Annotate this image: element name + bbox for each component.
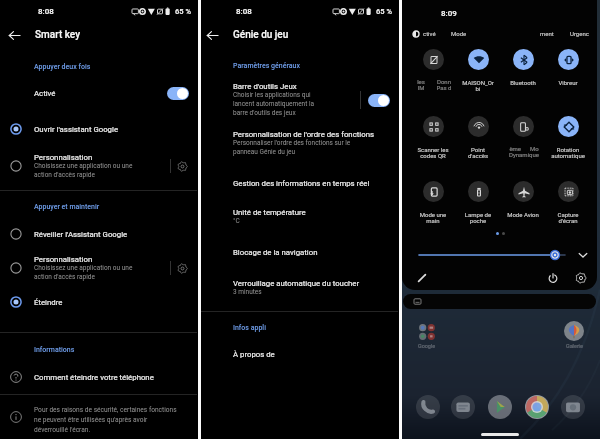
staticText: Point d'accès <box>455 146 501 160</box>
staticText: Personnalisation de l'ordre des fonction… <box>233 130 374 139</box>
button[interactable]: Ouvrir l'assistant Google <box>0 118 197 140</box>
staticText: les IM <box>400 78 446 92</box>
staticText: Mode <box>451 30 467 37</box>
button[interactable]: Personnalisation <box>0 149 197 183</box>
staticText: 3 minutes <box>233 288 262 296</box>
button[interactable]: Power <box>547 272 559 284</box>
staticText: Personnalisation <box>34 255 93 264</box>
staticText: Urgenc <box>570 30 589 37</box>
staticText: Mode une main <box>410 211 456 225</box>
staticText: Comment éteindre votre téléphone <box>34 373 154 382</box>
staticText: ème Mo Dynamique <box>499 145 549 159</box>
button[interactable]: Toggle <box>167 87 189 100</box>
button[interactable]: Settings <box>575 272 587 284</box>
button[interactable]: Back <box>198 22 398 48</box>
staticText <box>500 146 546 153</box>
button[interactable]: Lampe de poche <box>455 181 501 225</box>
staticText: À propos de <box>233 350 275 359</box>
staticText: Paramètres généraux <box>233 62 301 70</box>
other: Back <box>205 28 219 42</box>
button[interactable]: Barre d'outils Jeux <box>198 79 398 121</box>
button[interactable]: Mode Avion <box>500 181 546 218</box>
button[interactable]: Personnalisation de l'ordre des fonction… <box>198 130 398 160</box>
staticText: Choisir les applications qui lancent aut… <box>233 91 315 117</box>
staticText: Lampe de poche <box>455 211 501 225</box>
staticText: Personnaliser l'ordre des fonctions sur … <box>233 139 351 156</box>
button[interactable]: Settings <box>175 261 189 275</box>
button[interactable]: Gestion des informations en temps réel <box>198 179 398 197</box>
staticText: Choisissez une application ou une action… <box>34 264 133 281</box>
button[interactable]: Settings <box>175 159 189 173</box>
button[interactable]: App <box>525 395 549 419</box>
button[interactable]: Scanner les codes QR <box>410 116 456 160</box>
button[interactable]: Comment éteindre votre téléphone <box>0 365 197 389</box>
button[interactable]: Bluetooth <box>500 49 546 86</box>
button[interactable]: Rotation automatique <box>545 116 591 160</box>
staticText: Bluetooth <box>500 79 546 86</box>
staticText: Infos appli <box>233 324 266 332</box>
button[interactable]: App <box>416 395 440 419</box>
staticText: Unité de température <box>233 208 306 217</box>
button[interactable]: Capture d'écran <box>545 181 591 225</box>
staticText: MAISON_Or bi <box>455 79 501 93</box>
button[interactable]: Expand <box>577 249 589 261</box>
button[interactable] <box>410 49 456 86</box>
button[interactable]: Réveiller l'Assistant Google <box>0 223 197 245</box>
button[interactable]: Blocage de la navigation <box>198 248 398 266</box>
staticText: ment <box>540 30 554 37</box>
button[interactable]: Point d'accès <box>455 116 501 160</box>
button[interactable]: Mode une main <box>410 181 456 225</box>
button[interactable]: Activé <box>0 82 197 104</box>
staticText: Barre d'outils Jeux <box>233 82 297 91</box>
staticText: ctivé <box>423 30 436 37</box>
staticText: Rotation automatique <box>545 146 591 160</box>
staticText: Galerie <box>566 343 583 349</box>
button[interactable]: Verrouillage automatique du toucher <box>198 279 398 309</box>
button[interactable] <box>500 116 546 153</box>
staticText: Google <box>418 343 436 349</box>
button[interactable]: Unité de température <box>198 208 398 238</box>
staticText <box>410 79 456 86</box>
staticText: Scanner les codes QR <box>410 146 456 160</box>
staticText: Pour des raisons de sécurité, certaines … <box>34 406 177 433</box>
staticText: Smart key <box>35 29 81 41</box>
button[interactable]: Éteindre <box>0 291 197 313</box>
staticText: °C <box>233 217 240 225</box>
staticText: Vibreur <box>545 79 591 86</box>
button[interactable]: App <box>451 395 475 419</box>
staticText: Appuyer deux fois <box>34 63 91 71</box>
staticText: 8:08 <box>236 7 252 16</box>
button[interactable]: Toggle <box>368 94 390 107</box>
staticText: Génie du jeu <box>233 29 289 41</box>
staticText: Éteindre <box>34 298 63 307</box>
staticText: Gestion des informations en temps réel <box>233 179 370 188</box>
staticText: Appuyer et maintenir <box>34 203 100 211</box>
staticText: Choisissez une application ou une action… <box>34 162 133 179</box>
button[interactable]: App <box>488 395 512 419</box>
button[interactable]: Personnalisation <box>0 251 197 285</box>
button[interactable]: Back <box>0 22 197 48</box>
staticText: Informations <box>34 346 75 354</box>
staticText: Ouvrir l'assistant Google <box>34 125 119 134</box>
staticText: Capture d'écran <box>545 211 591 225</box>
staticText: 65 % <box>175 7 191 16</box>
staticText: Réveiller l'Assistant Google <box>34 230 128 239</box>
button[interactable]: App <box>561 395 585 419</box>
staticText: Activé <box>34 89 56 98</box>
staticText: Verrouillage automatique du toucher <box>233 279 360 288</box>
staticText: 65 % <box>376 7 392 16</box>
button[interactable]: MAISON_Or bi <box>455 49 501 93</box>
staticText: Donn Pas d <box>419 78 469 92</box>
staticText: 8:09 <box>441 9 457 18</box>
button[interactable]: À propos de <box>198 350 398 368</box>
other: Back <box>7 28 21 42</box>
staticText: Mode Avion <box>500 211 546 218</box>
staticText: Blocage de la navigation <box>233 248 318 257</box>
button[interactable]: Edit <box>416 272 428 284</box>
button[interactable]: Vibreur <box>545 49 591 86</box>
button[interactable] <box>403 294 596 309</box>
staticText: 8:08 <box>38 7 54 16</box>
staticText: Personnalisation <box>34 153 93 162</box>
